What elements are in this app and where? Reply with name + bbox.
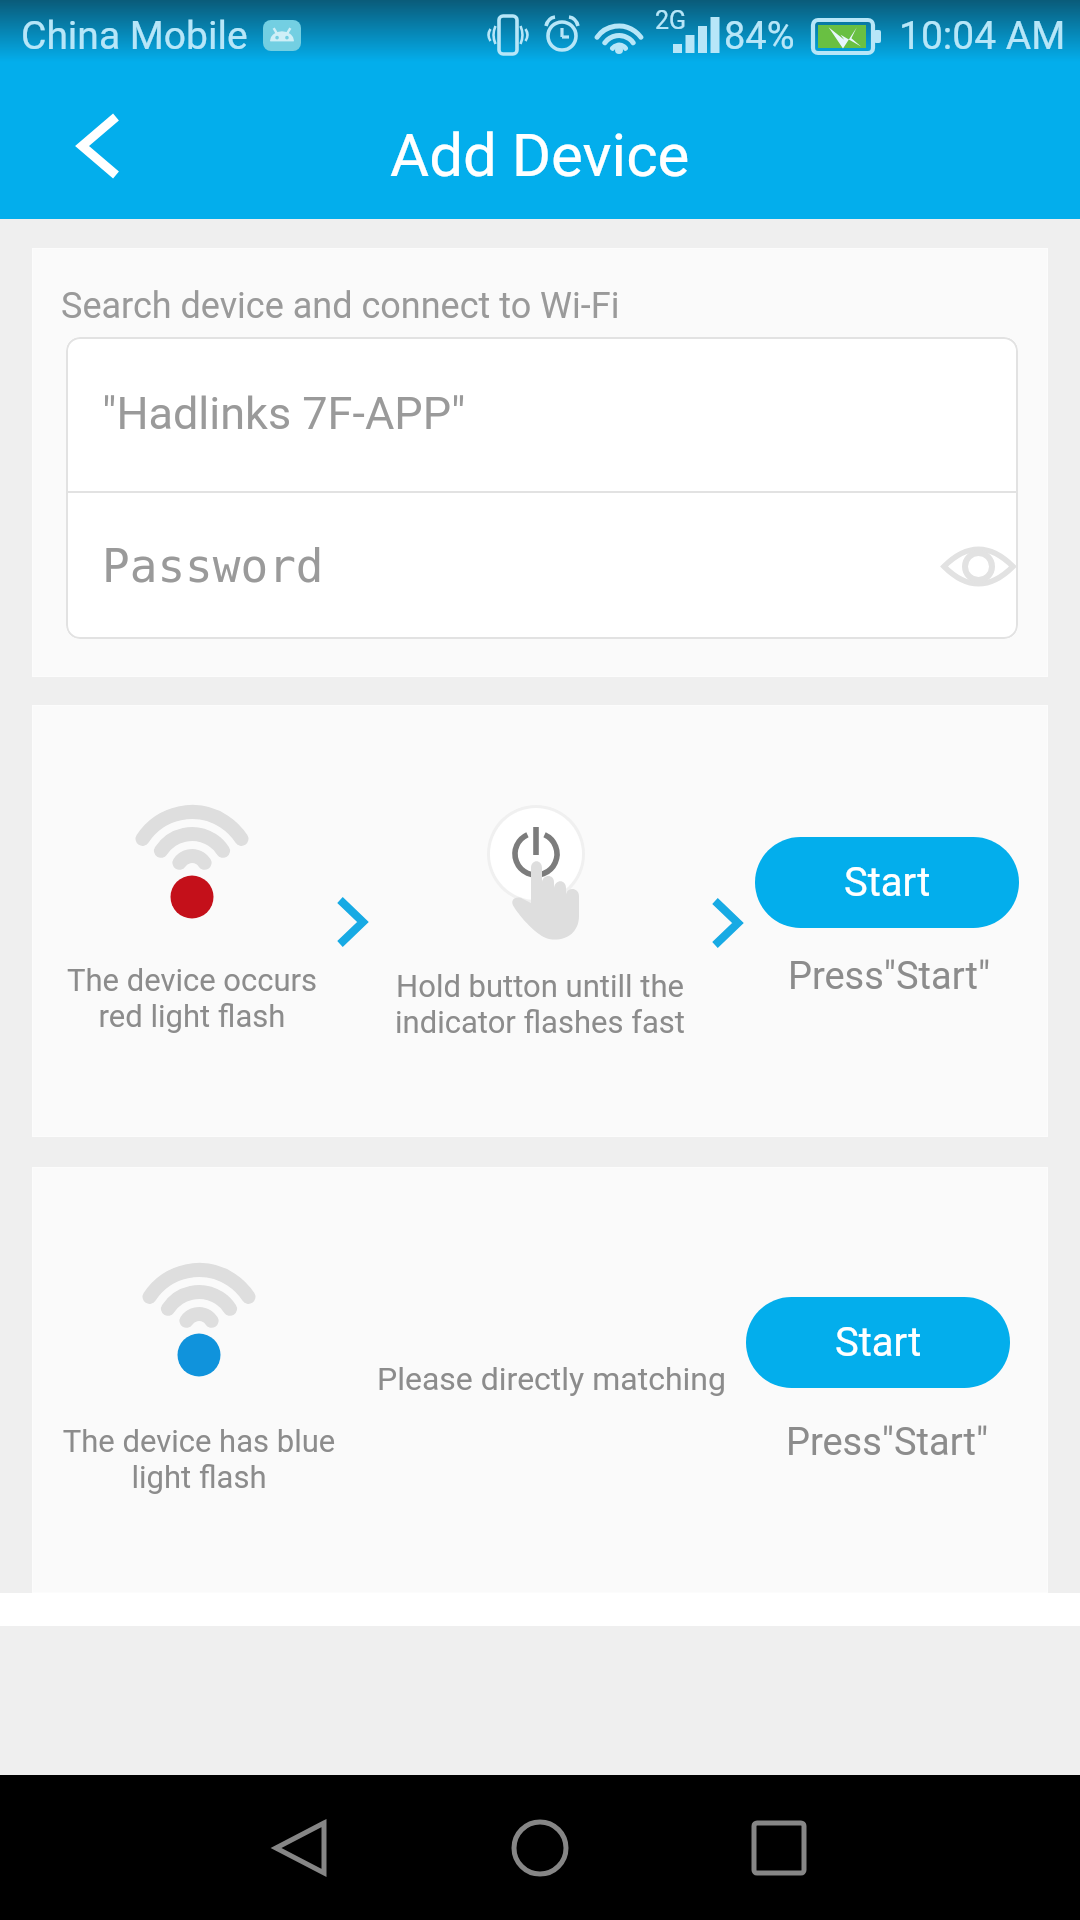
staticText: 84% (724, 14, 795, 59)
staticText: Search device and connect to Wi-Fi (61, 285, 620, 327)
staticText: "Hadlinks 7F-APP" (102, 387, 466, 440)
button[interactable]: Password (66, 493, 1018, 639)
staticText: China Mobile (21, 13, 248, 59)
staticText: Please directly matching (377, 1360, 726, 1398)
staticText: Press"Start" (732, 1420, 1042, 1465)
staticText: 2G (655, 6, 687, 35)
staticText: Password (102, 539, 324, 593)
staticText: Start (844, 859, 931, 906)
button[interactable]: Start (755, 837, 1019, 928)
button[interactable]: Start (746, 1297, 1010, 1388)
staticText: The device occurs red light flash (42, 962, 342, 1034)
button[interactable]: Home (470, 1778, 610, 1918)
staticText: Press"Start" (734, 954, 1044, 999)
staticText: Add Device (390, 120, 690, 190)
button[interactable]: "Hadlinks 7F-APP" (66, 337, 1018, 491)
button[interactable]: Back (230, 1778, 370, 1918)
staticText: 10:04 AM (899, 13, 1066, 59)
button[interactable]: Recents (709, 1778, 849, 1918)
staticText: Start (835, 1319, 922, 1366)
staticText: The device has blue light flash (49, 1423, 349, 1495)
button[interactable]: Back (39, 72, 159, 219)
staticText: Hold button untill the indicator flashes… (390, 968, 690, 1040)
button[interactable]: Show password (938, 526, 1018, 606)
